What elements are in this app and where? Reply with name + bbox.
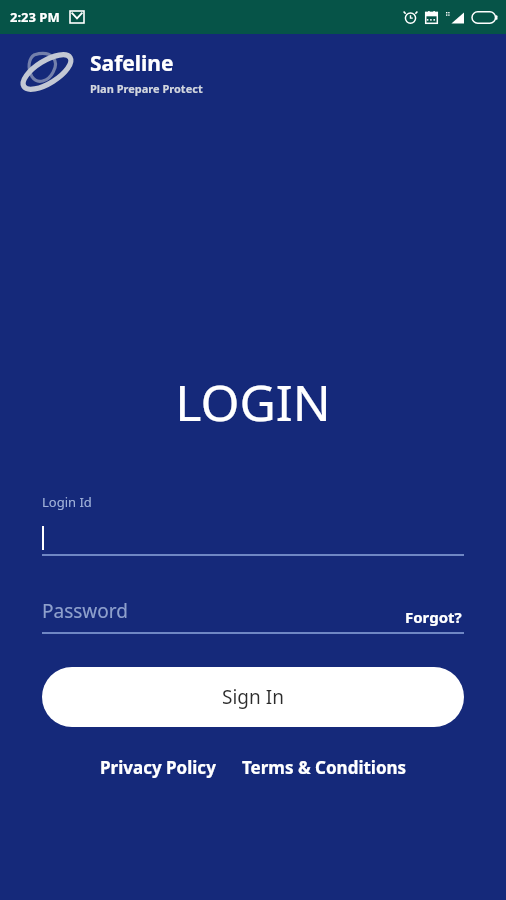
other: Safeline logo bbox=[16, 41, 78, 103]
staticText: Sign In bbox=[222, 684, 284, 710]
staticText: Forgot? bbox=[405, 607, 462, 627]
button[interactable]: Privacy Policy bbox=[96, 752, 220, 783]
staticText: Password bbox=[42, 598, 128, 624]
button[interactable]: Sign In bbox=[42, 667, 464, 727]
button[interactable] bbox=[42, 524, 464, 554]
staticText: LOGIN bbox=[0, 368, 506, 436]
staticText: Safeline bbox=[90, 49, 174, 78]
staticText: Terms & Conditions bbox=[242, 756, 407, 779]
staticText: Privacy Policy bbox=[100, 756, 216, 779]
staticText: Login Id bbox=[42, 493, 92, 511]
button[interactable]: Terms & Conditions bbox=[238, 752, 411, 783]
button[interactable]: Password bbox=[42, 594, 464, 628]
button[interactable]: Forgot? bbox=[403, 605, 464, 629]
staticText: 2:23 PM bbox=[10, 8, 60, 26]
staticText: Plan Prepare Protect bbox=[90, 81, 203, 96]
